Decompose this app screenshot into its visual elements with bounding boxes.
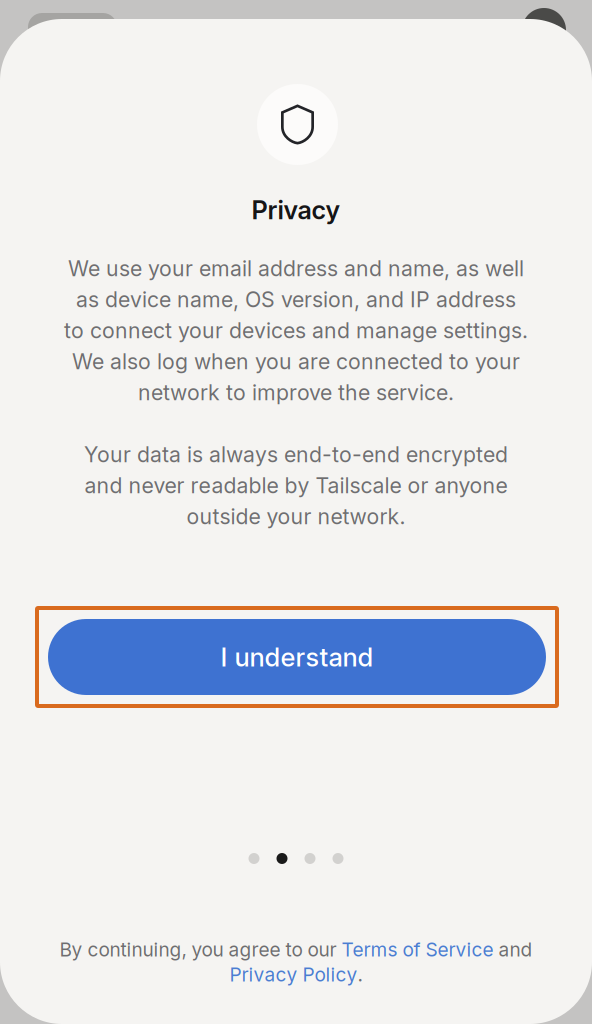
staticText: and never readable by Tailscale or anyon…	[84, 473, 507, 498]
staticText: Privacy	[251, 195, 340, 225]
staticText: Terms of Service	[341, 938, 493, 961]
staticText: network to improve the service.	[138, 380, 454, 405]
staticText: I understand	[220, 641, 373, 673]
staticText: By continuing, you agree to our	[59, 938, 341, 961]
staticText: as device name, OS version, and IP addre…	[76, 287, 516, 312]
staticText: and	[493, 938, 532, 961]
staticText: Your data is always end-to-end encrypted	[84, 442, 508, 467]
button[interactable]: Terms of Service	[341, 938, 493, 961]
button[interactable]: I understand	[37, 608, 557, 706]
staticText: outside your network.	[186, 504, 405, 529]
staticText: to connect your devices and manage setti…	[64, 318, 528, 343]
staticText: We also log when you are connected to yo…	[72, 349, 520, 374]
staticText: .	[357, 963, 362, 986]
staticText: Privacy Policy	[229, 963, 357, 986]
staticText: We use your email address and name, as w…	[68, 256, 524, 281]
button[interactable]: Privacy Policy	[229, 963, 357, 986]
